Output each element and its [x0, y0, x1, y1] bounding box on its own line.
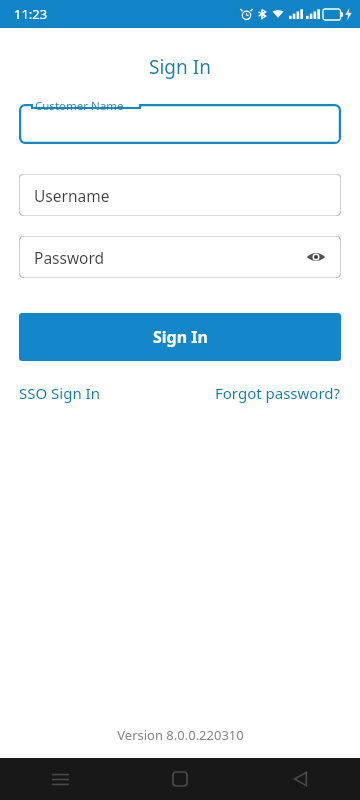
- button[interactable]: Recent apps: [0, 758, 120, 800]
- button[interactable]: Forgot password?: [215, 379, 341, 407]
- staticText: Customer Name: [35, 98, 124, 114]
- staticText: Password: [34, 247, 105, 268]
- staticText: Sign In: [153, 326, 208, 348]
- staticText: SSO Sign In: [19, 383, 100, 403]
- button[interactable]: Username: [19, 174, 341, 216]
- staticText: Forgot password?: [215, 383, 341, 403]
- staticText: Sign In: [149, 54, 211, 80]
- button[interactable]: SSO Sign In: [19, 379, 100, 407]
- staticText: 11:23: [14, 5, 48, 23]
- button[interactable]: Sign In: [19, 313, 341, 361]
- button[interactable]: Password: [19, 236, 341, 278]
- button[interactable]: Show password: [302, 243, 330, 271]
- button[interactable]: Back: [240, 758, 360, 800]
- button[interactable]: Customer Name: [19, 104, 341, 152]
- staticText: Username: [34, 185, 110, 206]
- staticText: Version 8.0.0.220310: [117, 726, 244, 744]
- button[interactable]: Home: [120, 758, 240, 800]
